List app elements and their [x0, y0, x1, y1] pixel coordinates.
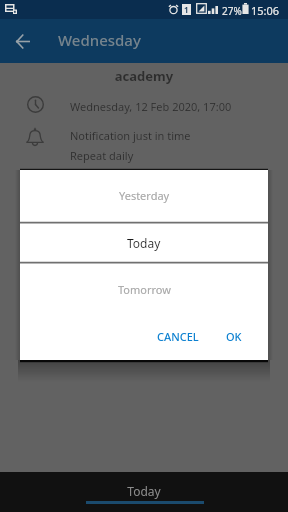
staticText: academy — [0, 67, 288, 85]
button[interactable]: Today — [20, 223, 268, 262]
staticText: 1 — [184, 4, 189, 15]
button[interactable]: Today — [0, 483, 288, 499]
staticText: Tomorrow — [118, 282, 171, 297]
staticText: Today — [127, 235, 161, 251]
staticText: Repeat daily — [70, 148, 134, 163]
staticText: 27% — [222, 4, 242, 18]
staticText: Wednesday — [58, 30, 141, 50]
button[interactable]: Back — [4, 23, 40, 59]
button[interactable]: CANCEL — [148, 323, 208, 349]
button[interactable]: Yesterday — [20, 170, 268, 220]
staticText: Yesterday — [119, 188, 170, 203]
staticText: OK — [226, 329, 242, 344]
staticText: Notification just in time — [70, 128, 191, 143]
staticText: CANCEL — [157, 329, 199, 344]
button[interactable]: OK — [217, 323, 251, 349]
staticText: 15:06 — [251, 3, 280, 18]
button[interactable]: Tomorrow — [20, 263, 268, 315]
staticText: Wednesday, 12 Feb 2020, 17:00 — [70, 99, 232, 114]
